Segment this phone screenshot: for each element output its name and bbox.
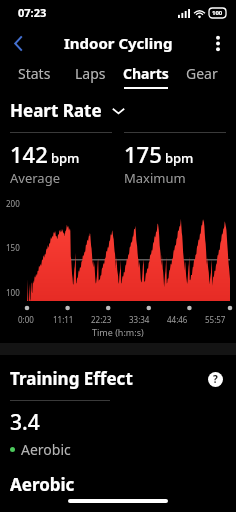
staticText: 0:00 (18, 314, 34, 325)
staticText: Training Effect (10, 367, 133, 390)
staticText: 22:23 (91, 314, 112, 325)
staticText: 11:11 (53, 314, 74, 325)
staticText: 150 (6, 242, 20, 253)
staticText: Laps (75, 64, 106, 83)
staticText: 100 (6, 287, 20, 298)
staticText: 07:23 (18, 5, 47, 20)
button[interactable]: More options (200, 25, 236, 61)
staticText: 142 (10, 139, 48, 169)
button[interactable]: Expand Heart Rate (109, 102, 127, 120)
staticText: Heart Rate (10, 99, 102, 122)
button[interactable]: Gear (174, 61, 230, 92)
button[interactable]: Charts (118, 61, 174, 92)
staticText: 175 (124, 139, 162, 169)
staticText: 200 (6, 198, 20, 209)
staticText: Stats (18, 64, 51, 83)
staticText: 33:34 (129, 314, 150, 325)
button[interactable]: Laps (62, 61, 118, 92)
staticText: 3.4 (10, 408, 40, 437)
staticText: 55:57 (205, 314, 226, 325)
button[interactable]: Back (0, 25, 36, 61)
staticText: Average (10, 169, 60, 187)
staticText: Aerobic (10, 473, 75, 496)
button[interactable]: Stats (6, 61, 62, 92)
staticText: Maximum (124, 169, 186, 187)
button[interactable]: Help about Training Effect (204, 368, 226, 390)
staticText: Charts (123, 64, 169, 83)
staticText: bpm (51, 149, 80, 167)
staticText: bpm (165, 149, 194, 167)
staticText: Indoor Cycling (64, 33, 173, 53)
staticText: ? (213, 372, 218, 386)
staticText: Gear (186, 64, 218, 83)
staticText: 44:46 (167, 314, 188, 325)
staticText: Time (h:m:s) (92, 326, 144, 338)
staticText: Aerobic (21, 440, 71, 459)
staticText: 100 (212, 9, 223, 17)
